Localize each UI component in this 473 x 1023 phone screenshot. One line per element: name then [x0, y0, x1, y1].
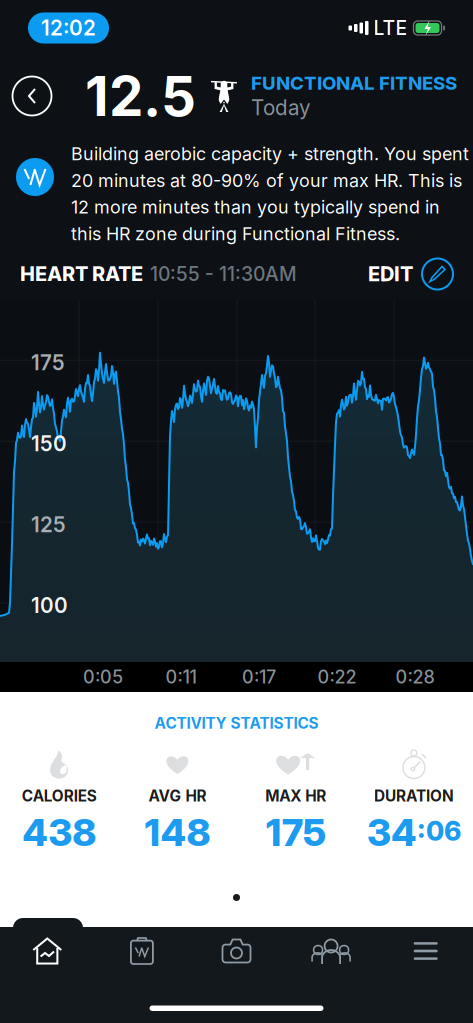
staticText: LTE [373, 16, 407, 40]
staticText: 175 [31, 350, 65, 375]
staticText: 20 minutes at 80-90% of your max HR. Thi… [71, 170, 462, 191]
staticText: FUNCTIONAL FITNESS [251, 72, 457, 94]
staticText: 148 [144, 809, 210, 855]
button[interactable]: EDIT [368, 258, 453, 289]
staticText: 175 [266, 809, 326, 855]
staticText: 0:22 [317, 666, 356, 688]
staticText: MAX HR [265, 787, 326, 805]
staticText: 12:02 [41, 15, 96, 40]
staticText: DURATION [374, 787, 454, 805]
staticText: :06 [417, 815, 461, 847]
staticText: 10:55 - 11:30AM [150, 262, 297, 286]
staticText: HEART RATE [20, 262, 143, 286]
button[interactable]: Journal [95, 929, 189, 973]
button[interactable]: Overview [0, 929, 95, 973]
button[interactable]: Camera [189, 929, 284, 973]
staticText: 0:28 [395, 666, 434, 688]
button[interactable]: Back [6, 70, 58, 122]
staticText: 0:11 [165, 666, 196, 688]
staticText: AVG HR [148, 787, 206, 805]
staticText: Building aerobic capacity + strength. Yo… [71, 143, 469, 165]
staticText: 150 [31, 431, 67, 456]
staticText: ACTIVITY STATISTICS [154, 714, 318, 733]
staticText: 0:05 [83, 666, 123, 688]
staticText: 438 [22, 809, 96, 855]
button[interactable]: Community [284, 929, 378, 973]
staticText: 12 more minutes than you typically spend… [71, 196, 440, 218]
staticText: 125 [31, 512, 66, 537]
staticText: 12.5 [85, 63, 196, 129]
staticText: 100 [31, 593, 68, 618]
staticText: EDIT [368, 262, 413, 286]
staticText: CALORIES [22, 787, 97, 805]
staticText: 0:17 [242, 666, 276, 688]
staticText: 34 [367, 809, 417, 855]
staticText: Today [251, 95, 311, 120]
staticText: this HR zone during Functional Fitness. [71, 223, 400, 244]
button[interactable]: More [378, 929, 473, 973]
